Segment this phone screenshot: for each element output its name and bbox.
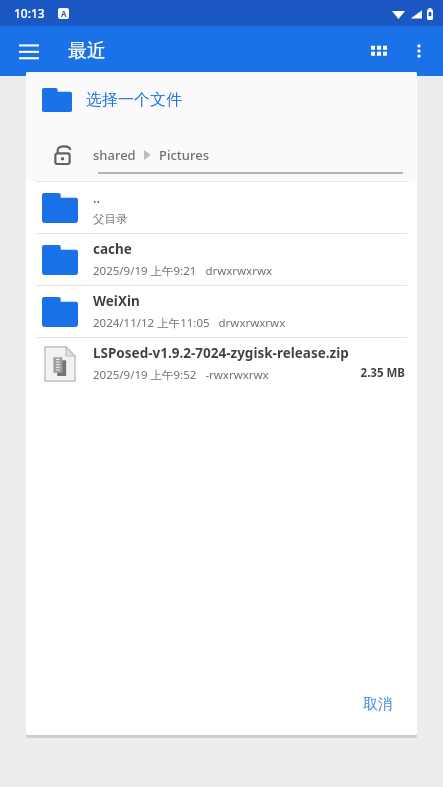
staticText: 选择一个文件 [86, 90, 182, 110]
staticText: shared [93, 146, 136, 164]
staticText: 2025/9/19 上午9:21 drwxrwxrwx [93, 263, 273, 279]
staticText: 2025/9/19 上午9:52 -rwxrwxrwx [93, 367, 269, 383]
staticText: LSPosed-v1.9.2-7024-zygisk-release.zip [93, 344, 349, 362]
staticText: 2024/11/12 上午11:05 drwxrwxrwx [93, 315, 286, 331]
staticText: 10:13 [14, 5, 45, 21]
staticText: A [61, 8, 67, 19]
button[interactable]: WeiXin [26, 286, 417, 337]
button[interactable]: cache [26, 234, 417, 285]
button[interactable]: 取消 [349, 686, 407, 723]
button[interactable]: .. [26, 182, 417, 233]
button[interactable]: Grid view [359, 31, 399, 71]
staticText: 最近 [68, 39, 106, 63]
staticText: 取消 [363, 695, 393, 714]
button[interactable]: More options [399, 31, 439, 71]
staticText: WeiXin [93, 292, 140, 310]
staticText: 2.35 MB [360, 365, 405, 381]
staticText: Pictures [159, 146, 209, 164]
staticText: cache [93, 240, 132, 258]
staticText: 父目录 [93, 212, 128, 226]
staticText: .. [93, 189, 101, 207]
button[interactable]: LSPosed-v1.9.2-7024-zygisk-release.zip [26, 338, 417, 389]
button[interactable]: Menu [10, 32, 48, 70]
